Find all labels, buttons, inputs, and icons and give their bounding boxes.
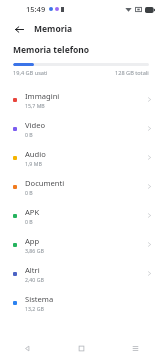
staticText: Audio [25, 149, 46, 159]
button[interactable]: Audio [0, 143, 162, 172]
button[interactable]: Documenti [0, 172, 162, 201]
button[interactable]: Immagini [0, 85, 162, 114]
staticText: 3,86 GB [25, 247, 44, 254]
staticText: 128 GB totali [115, 69, 149, 77]
staticText: APK [25, 207, 40, 217]
staticText: Altri [25, 265, 40, 275]
staticText: Memoria telefono [13, 44, 90, 56]
button[interactable]: Recent apps [108, 336, 162, 360]
button[interactable]: Video [0, 114, 162, 143]
staticText: App [25, 236, 40, 246]
button[interactable]: APK [0, 201, 162, 230]
staticText: Memoria [34, 23, 73, 35]
staticText: 13,2 GB [25, 305, 44, 312]
staticText: 0 B [25, 189, 33, 196]
button[interactable]: Back [11, 21, 27, 37]
staticText: 0 B [25, 218, 33, 225]
button[interactable]: Back [0, 336, 54, 360]
staticText: Video [25, 120, 46, 130]
staticText: Documenti [25, 178, 65, 188]
staticText: Immagini [25, 91, 60, 101]
button[interactable]: Sistema [0, 288, 162, 317]
staticText: 15:49 [26, 4, 46, 14]
button[interactable]: Home [54, 336, 108, 360]
button[interactable]: Altri [0, 259, 162, 288]
staticText: 0 B [25, 131, 33, 138]
staticText: 1,9 MB [25, 160, 42, 167]
staticText: Sistema [25, 294, 54, 304]
staticText: 2,40 GB [25, 276, 44, 283]
staticText: 15,7 MB [25, 102, 45, 109]
staticText: 19,4 GB usati [13, 69, 48, 77]
button[interactable]: App [0, 230, 162, 259]
